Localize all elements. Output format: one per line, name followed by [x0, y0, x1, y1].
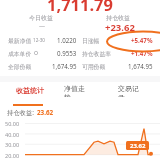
staticText: 20.00 [5, 152, 20, 159]
button[interactable]: 交易记录 [118, 84, 145, 97]
staticText: 收益统计 [16, 86, 44, 95]
staticText: 12-30 [33, 37, 45, 43]
staticText: 今日收益 [29, 14, 53, 22]
staticText: 可用份额 [82, 63, 106, 70]
staticText: 30.00 [5, 141, 20, 148]
staticText: 50.00 [5, 120, 20, 127]
staticText: 持仓收益: [7, 108, 34, 117]
staticText: 持仓收益 [106, 14, 130, 22]
staticText: 交易记录 [118, 84, 145, 97]
staticText: 最新净值 [8, 37, 32, 44]
staticText: 40.00 [5, 131, 20, 138]
staticText: 成本单价 [8, 50, 32, 57]
staticText: 日涨幅 [82, 37, 100, 44]
staticText: 1.0220 [57, 36, 77, 44]
button[interactable]: 净值走势 [64, 84, 91, 97]
staticText: 1,674.95 [52, 62, 77, 70]
staticText: 1,711.79 [47, 0, 113, 15]
staticText: — [39, 22, 46, 30]
staticText: +5.47% [131, 36, 153, 44]
staticText: 0.9553 [57, 49, 77, 57]
staticText: 23.62 [130, 142, 146, 150]
staticText: +23.62 [105, 21, 135, 34]
staticText: 全部份额 [8, 63, 32, 70]
staticText: +1.47% [131, 49, 153, 57]
staticText: 净值走势 [64, 84, 91, 97]
staticText: 1,674.95 [128, 62, 153, 70]
staticText: 23.62 [37, 108, 54, 117]
button[interactable]: 收益统计 [16, 84, 44, 97]
staticText: 持仓收益率 [82, 50, 111, 57]
